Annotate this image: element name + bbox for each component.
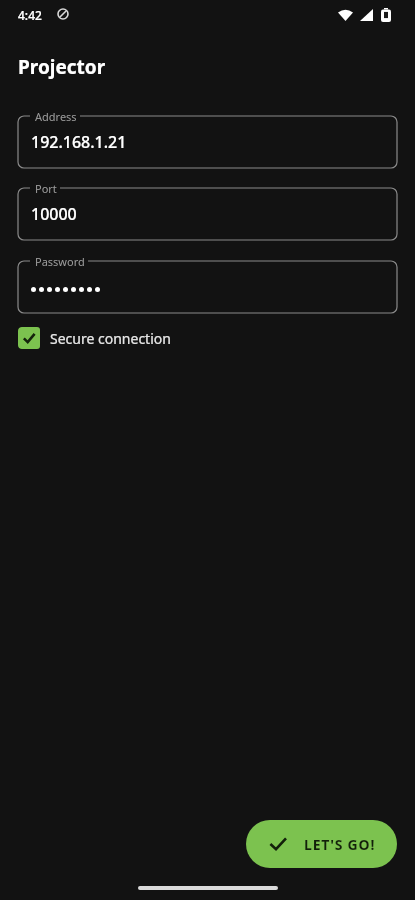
button[interactable]: Password xyxy=(18,261,397,313)
staticText: Port xyxy=(35,181,57,196)
button[interactable]: LET'S GO! xyxy=(246,820,397,868)
staticText: Password xyxy=(35,254,85,269)
staticText: Secure connection xyxy=(50,329,171,348)
staticText: Address xyxy=(35,109,77,124)
staticText: LET'S GO! xyxy=(304,835,376,854)
button[interactable]: Port xyxy=(18,188,397,240)
button[interactable]: Secure connection xyxy=(18,327,179,349)
staticText: 4:42 xyxy=(18,7,42,23)
staticText: 10000 xyxy=(31,203,77,225)
button[interactable]: Address xyxy=(18,116,397,168)
staticText: 192.168.1.21 xyxy=(31,131,127,153)
staticText: Projector xyxy=(18,54,106,80)
